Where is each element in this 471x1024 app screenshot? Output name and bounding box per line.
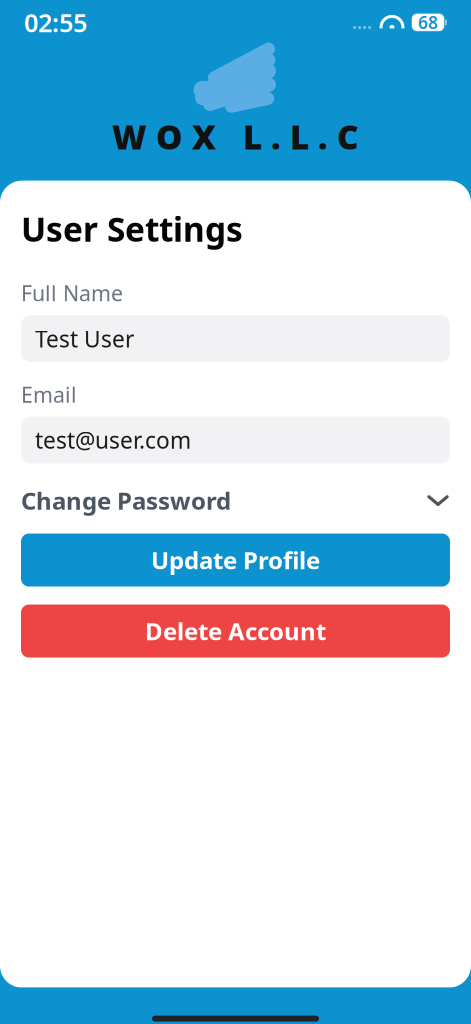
staticText: 02:55 xyxy=(24,5,87,39)
button[interactable]: Delete Account xyxy=(21,605,450,658)
staticText: test@user.com xyxy=(35,425,191,455)
button[interactable]: Change Password xyxy=(21,486,450,516)
staticText: Update Profile xyxy=(151,544,320,576)
staticText: User Settings xyxy=(21,207,243,251)
staticText: W O X L . L . C xyxy=(112,114,359,159)
staticText: Full Name xyxy=(21,279,123,307)
button[interactable]: Update Profile xyxy=(21,534,450,587)
staticText: Test User xyxy=(35,324,134,354)
staticText: Delete Account xyxy=(145,615,326,647)
staticText: Change Password xyxy=(21,485,231,516)
staticText: .... xyxy=(352,11,372,34)
staticText: Email xyxy=(21,380,77,408)
staticText: 68 xyxy=(418,11,438,34)
